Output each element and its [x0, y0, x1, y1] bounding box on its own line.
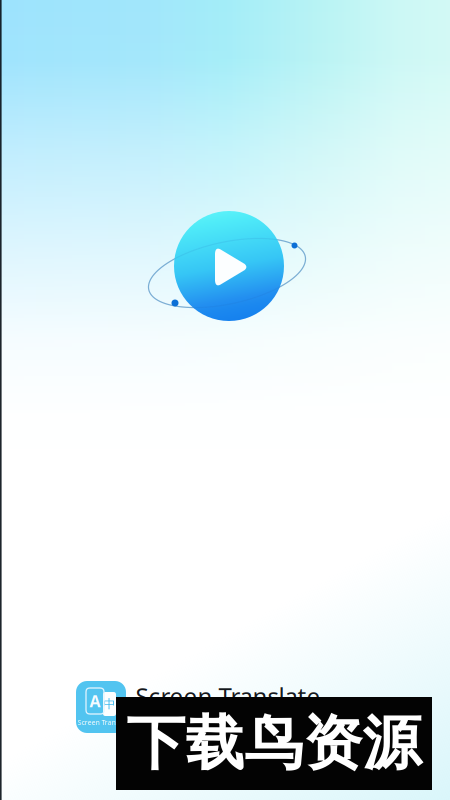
staticText: Screen Translate	[135, 680, 320, 712]
staticText: A	[89, 690, 100, 712]
staticText: 下载鸟资源	[126, 707, 421, 780]
staticText: Screen Transla	[77, 718, 124, 727]
staticText: 中	[103, 697, 115, 711]
